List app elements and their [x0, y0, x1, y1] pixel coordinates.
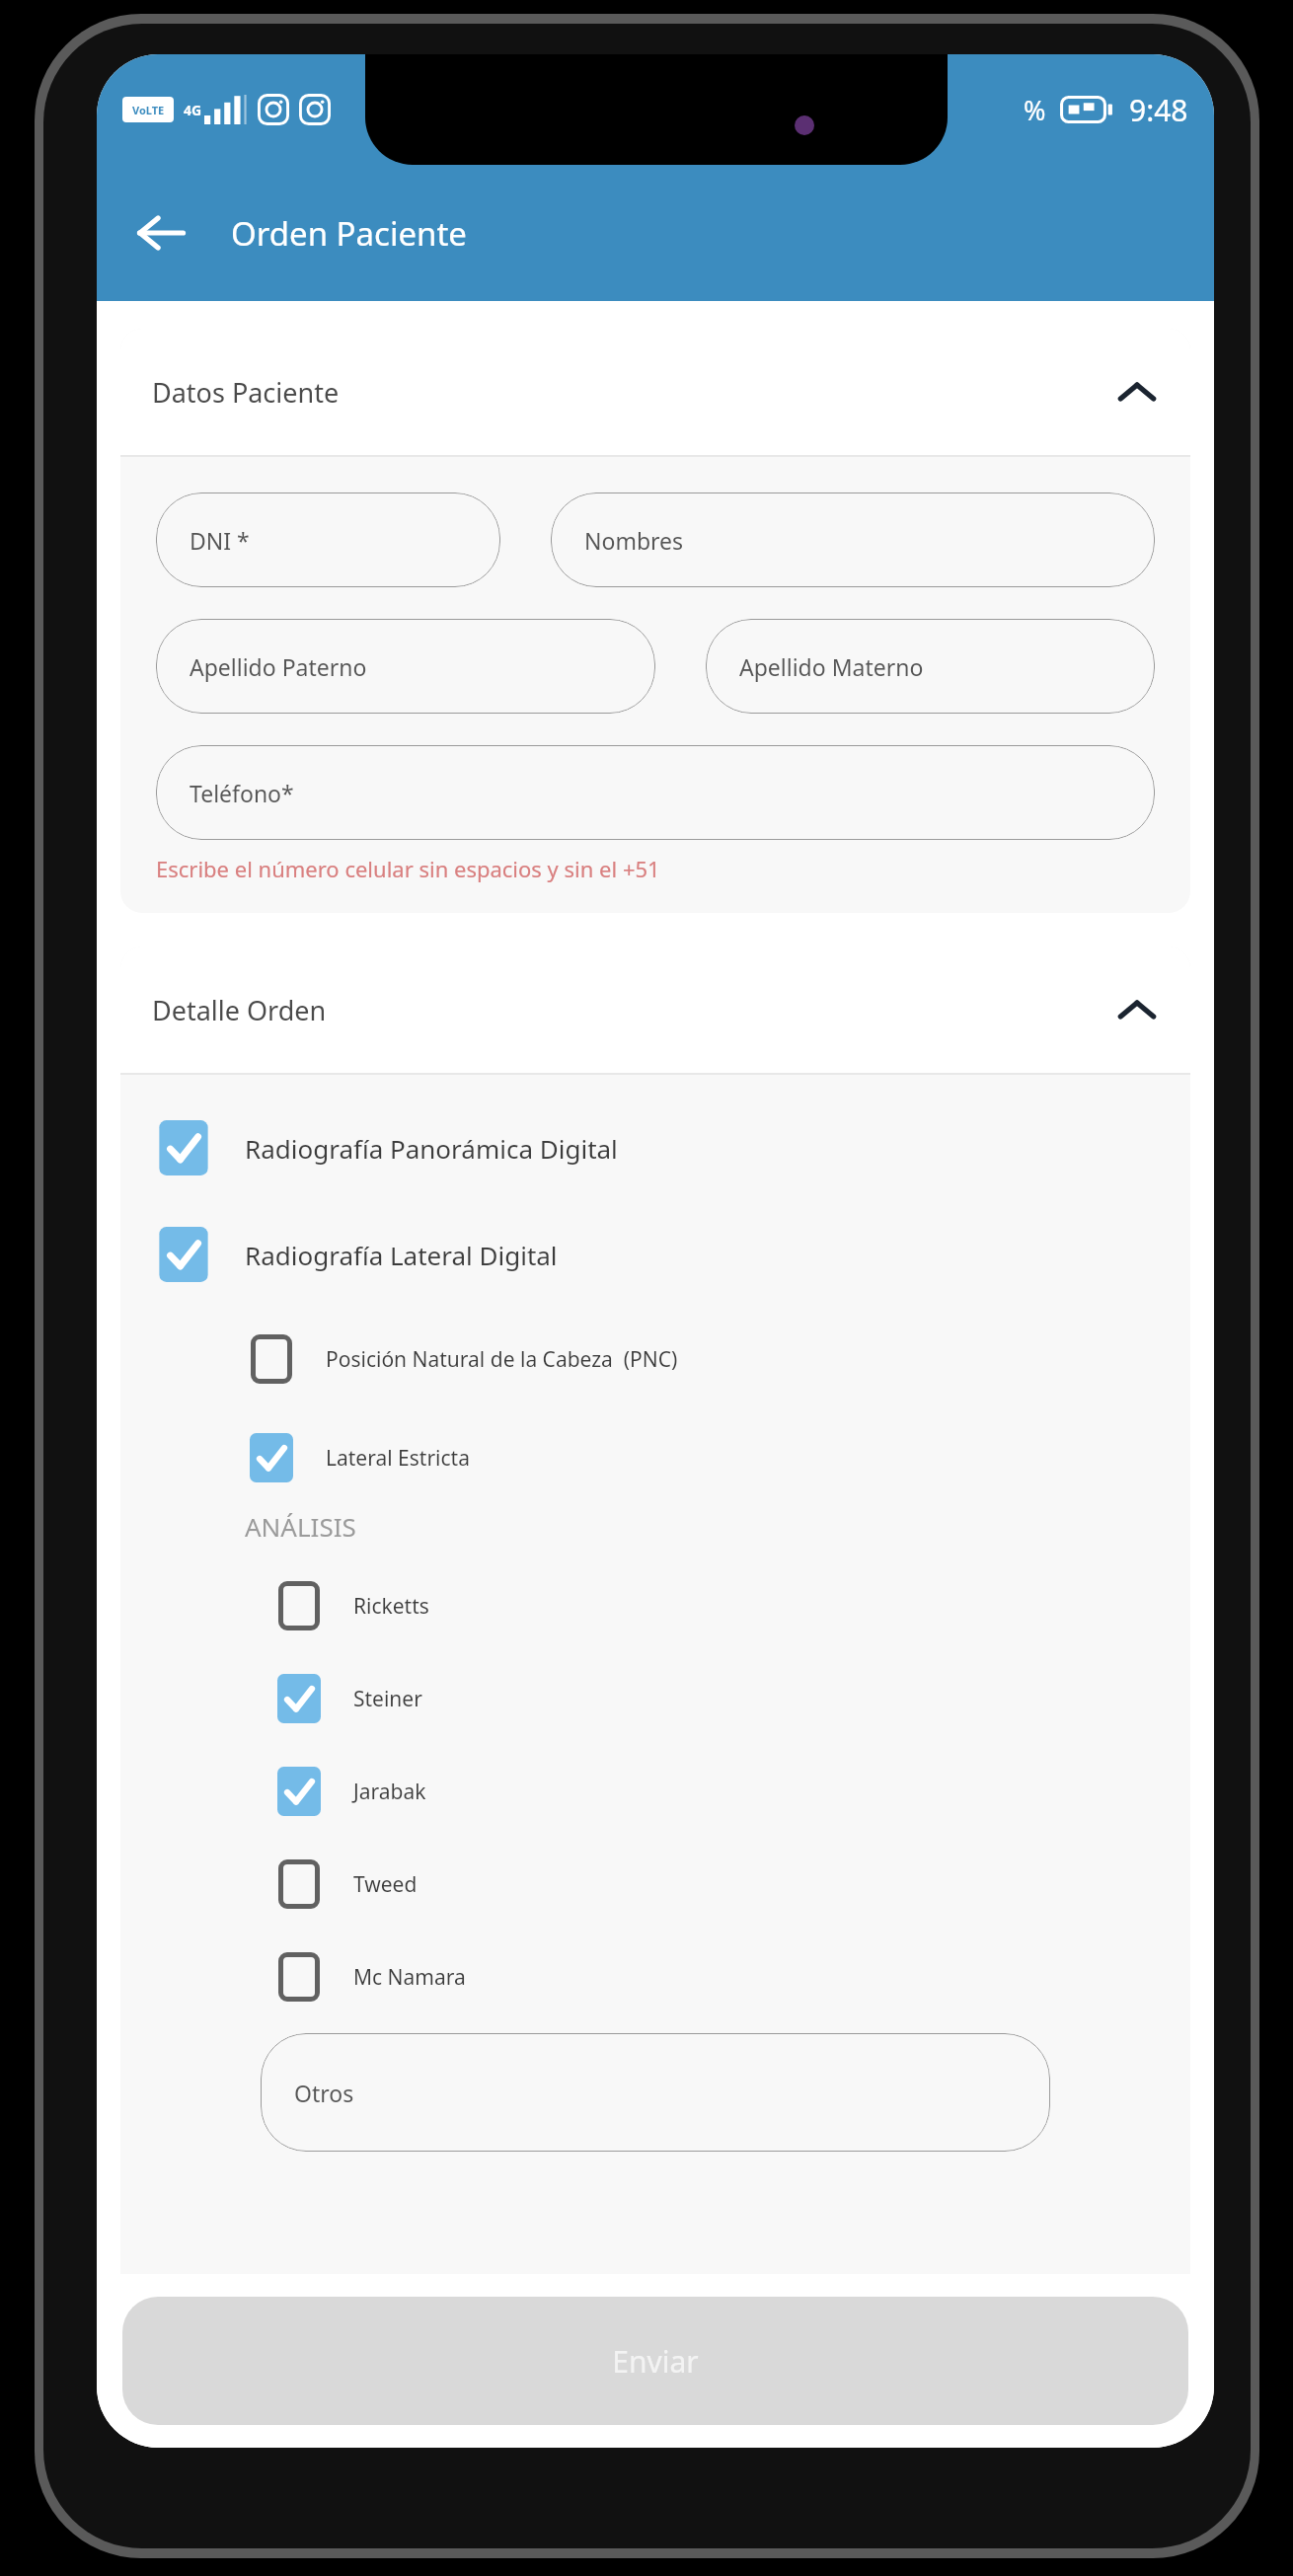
- staticText: Enviar: [612, 2341, 699, 2382]
- button[interactable]: Teléfono*: [156, 745, 1155, 840]
- staticText: Teléfono*: [190, 778, 294, 808]
- button[interactable]: Mc Namara: [120, 1931, 1190, 2023]
- button[interactable]: Apellido Materno: [706, 619, 1155, 714]
- staticText: Jarabak: [353, 1778, 426, 1806]
- staticText: Radiografía Lateral Digital: [245, 1238, 558, 1272]
- staticText: Posición Natural de la Cabeza (PNC): [326, 1345, 678, 1374]
- staticText: Otros: [294, 2078, 354, 2108]
- button[interactable]: Back: [118, 190, 203, 275]
- staticText: Datos Paciente: [152, 374, 340, 411]
- staticText: Lateral Estricta: [326, 1444, 470, 1473]
- button[interactable]: Apellido Paterno: [156, 619, 655, 714]
- staticText: Nombres: [584, 525, 684, 556]
- button[interactable]: Steiner: [120, 1652, 1190, 1745]
- button[interactable]: DNI *: [156, 492, 500, 587]
- staticText: Steiner: [353, 1685, 422, 1713]
- staticText: Orden Paciente: [231, 211, 467, 256]
- staticText: 4G: [184, 101, 202, 119]
- button[interactable]: Nombres: [551, 492, 1155, 587]
- staticText: ANÁLISIS: [245, 1509, 356, 1544]
- button[interactable]: Enviar: [122, 2297, 1188, 2425]
- button[interactable]: Detalle Orden: [120, 947, 1190, 1073]
- button[interactable]: Posición Natural de la Cabeza (PNC): [120, 1308, 1190, 1410]
- button[interactable]: Radiografía Lateral Digital: [120, 1201, 1190, 1308]
- button[interactable]: Ricketts: [120, 1559, 1190, 1652]
- staticText: Tweed: [353, 1870, 418, 1899]
- staticText: Ricketts: [353, 1592, 429, 1621]
- button[interactable]: Datos Paciente: [120, 329, 1190, 455]
- staticText: Escribe el número celular sin espacios y…: [156, 854, 660, 883]
- staticText: %: [1024, 92, 1046, 128]
- staticText: VoLTE: [132, 103, 165, 117]
- staticText: 9:48: [1129, 90, 1188, 130]
- button[interactable]: Radiografía Panorámica Digital: [120, 1095, 1190, 1201]
- staticText: DNI *: [190, 525, 250, 556]
- staticText: Apellido Paterno: [190, 651, 367, 682]
- staticText: Mc Namara: [353, 1963, 466, 1992]
- staticText: Apellido Materno: [739, 651, 924, 682]
- button[interactable]: Lateral Estricta: [120, 1410, 1190, 1505]
- button[interactable]: Jarabak: [120, 1745, 1190, 1838]
- staticText: Radiografía Panorámica Digital: [245, 1131, 618, 1166]
- staticText: Detalle Orden: [152, 992, 327, 1028]
- button[interactable]: Otros: [261, 2033, 1050, 2152]
- button[interactable]: Tweed: [120, 1838, 1190, 1931]
